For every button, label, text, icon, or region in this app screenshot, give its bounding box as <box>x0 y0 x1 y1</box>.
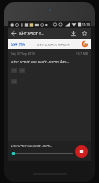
staticText: ኢትዮ አማርኛ የዜና ስርጸት -ጳጉሜ… <box>11 144 73 148</box>
staticText: 11:15 <box>82 23 90 27</box>
staticText: ኢትዮ ዐ-ኢምቦና ትምህርት <box>37 42 70 46</box>
button[interactable]: Play <box>11 68 17 73</box>
button[interactable]: Back <box>8 28 19 39</box>
button[interactable]: App <box>81 40 89 48</box>
button[interactable]: Favorite <box>79 28 90 39</box>
button[interactable]: ኢትዮ ፓስት <box>11 42 26 47</box>
staticText: 13.7 MB <box>76 52 88 56</box>
button[interactable]: More <box>11 79 17 84</box>
staticText: ኢትዮ አማርኛ የዜና ስርጸት -ጳጉሜን 4ቀን… <box>11 59 70 64</box>
button[interactable]: Share <box>19 68 25 73</box>
staticText: Sat, 07 Sep 2019 <box>11 52 35 56</box>
button[interactable]: Seek bar <box>11 151 73 155</box>
staticText: ኢትዮ አማርኛ የ… <box>19 31 68 37</box>
button[interactable]: Play <box>75 145 88 158</box>
button[interactable]: Download <box>68 28 79 39</box>
button[interactable]: ኢትዮ ዐ-ኢምቦና ትምህርት <box>37 42 70 46</box>
staticText: ኢትዮ ፓስት <box>11 42 26 47</box>
